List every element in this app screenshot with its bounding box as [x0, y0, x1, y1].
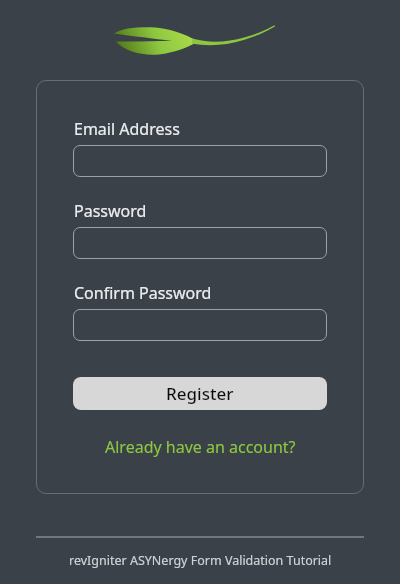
button[interactable]	[73, 309, 327, 341]
staticText: Register	[166, 382, 234, 405]
staticText: Confirm Password	[74, 282, 212, 304]
staticText: revIgniter ASYNergy Form Validation Tuto…	[69, 552, 332, 569]
staticText: Email Address	[74, 118, 180, 140]
button[interactable]	[73, 227, 327, 259]
staticText: Already have an account?	[105, 436, 296, 458]
button[interactable]	[73, 145, 327, 177]
button[interactable]: Register	[73, 377, 327, 410]
button[interactable]: Already have an account?	[105, 436, 296, 458]
staticText: Password	[74, 200, 147, 222]
